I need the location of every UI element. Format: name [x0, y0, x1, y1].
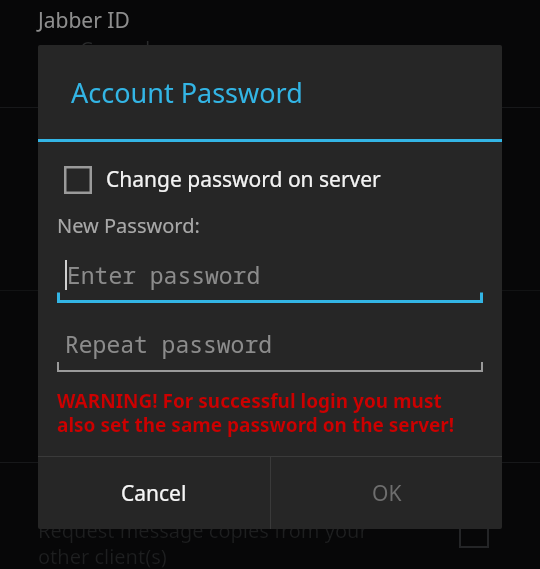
staticText: Change password on server — [106, 165, 381, 194]
staticText: OK — [372, 479, 402, 508]
staticText: General — [80, 36, 151, 62]
staticText: Cancel — [121, 479, 187, 508]
button[interactable]: Repeat password — [57, 326, 483, 372]
staticText: Request message copies from your other c… — [38, 517, 368, 569]
staticText: Repeat password — [65, 328, 273, 359]
button[interactable]: Cancel — [38, 457, 270, 529]
button[interactable]: Enter password — [57, 257, 483, 303]
staticText: New Password: — [57, 212, 200, 239]
staticText: WARNING! For successful login you must a… — [57, 388, 455, 437]
staticText: Enter password — [67, 259, 261, 290]
staticText: Account Password — [71, 74, 303, 111]
staticText: Jabber ID — [38, 6, 130, 35]
button[interactable]: OK — [271, 457, 502, 529]
button[interactable]: Change password on server — [38, 161, 502, 198]
